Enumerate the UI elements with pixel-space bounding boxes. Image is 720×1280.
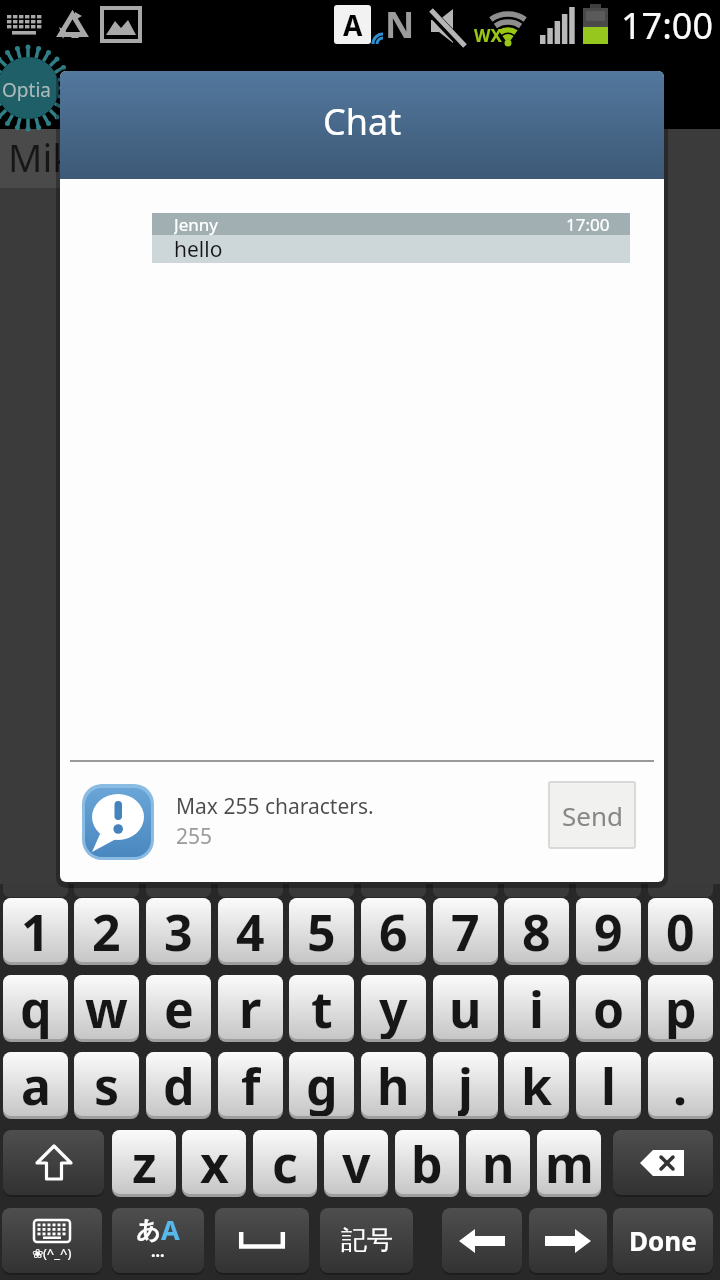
button[interactable]: 8 [504,898,569,962]
button[interactable] [215,1208,309,1273]
staticText: x [200,1130,229,1194]
button[interactable]: 記号 [320,1208,413,1273]
button[interactable]: 0 [648,898,713,962]
button[interactable]: t [289,975,354,1039]
button[interactable] [529,1208,607,1273]
staticText: r [239,975,262,1039]
staticText: 2 [92,898,121,962]
staticText: Done [629,1223,697,1258]
staticText: 17:00 [566,213,610,235]
button[interactable]: c [253,1130,317,1194]
staticText: hello [174,235,223,263]
button[interactable]: 7 [433,898,498,962]
button[interactable]: 9 [576,898,641,962]
staticText: 7 [451,898,480,962]
staticText: p [665,975,697,1039]
staticText: z [132,1130,157,1194]
staticText: あ [136,1215,161,1245]
button[interactable]: g [289,1052,354,1116]
staticText: g [306,1052,338,1116]
staticText: 8 [522,898,551,962]
staticText: u [449,975,482,1039]
staticText: s [94,1052,120,1116]
button[interactable]: 3 [146,898,211,962]
button[interactable]: w [74,975,139,1039]
button[interactable]: b [395,1130,459,1194]
staticText: a [21,1052,51,1116]
button[interactable] [3,1130,104,1195]
staticText: 5 [307,898,336,962]
button[interactable]: q [3,975,68,1039]
button[interactable]: x [182,1130,246,1194]
button[interactable]: Jenny [174,213,610,235]
staticText: Jenny [174,213,218,235]
staticText: Optia [2,77,51,101]
staticText: ... [151,1240,165,1262]
button[interactable]: h [361,1052,426,1116]
button[interactable]: e [146,975,211,1039]
button[interactable]: v [324,1130,388,1194]
button[interactable]: a [3,1052,68,1116]
staticText: c [272,1130,298,1194]
staticText: q [20,975,52,1039]
staticText: j [458,1052,473,1116]
button[interactable]: k [504,1052,569,1116]
staticText: k [521,1052,552,1116]
staticText: w [85,975,128,1039]
button[interactable]: y [361,975,426,1039]
staticText: Max 255 characters. [176,792,374,821]
button[interactable]: Send [548,781,636,849]
staticText: 9 [594,898,623,962]
staticText: l [601,1052,616,1116]
staticText: WX [474,24,502,47]
staticText: 4 [236,898,265,962]
staticText: v [342,1130,371,1194]
staticText: 17:00 [621,1,714,49]
staticText: t [311,975,333,1039]
button[interactable]: m [537,1130,601,1194]
staticText: m [545,1130,594,1194]
staticText: A [343,6,363,44]
staticText: . [673,1052,688,1116]
button[interactable]: 2 [74,898,139,962]
button[interactable] [82,784,154,860]
staticText: f [241,1052,261,1116]
button[interactable]: . [648,1052,713,1116]
button[interactable]: l [576,1052,641,1116]
button[interactable]: s [74,1052,139,1116]
button[interactable]: Done [613,1208,713,1273]
staticText: 6 [379,898,408,962]
button[interactable]: あ [112,1208,204,1273]
button[interactable]: f [218,1052,283,1116]
staticText: Mik [8,131,60,183]
staticText: A [161,1211,180,1248]
button[interactable]: n [466,1130,530,1194]
button[interactable]: p [648,975,713,1039]
staticText: 3 [164,898,193,962]
button[interactable] [613,1130,713,1195]
button[interactable]: z [112,1130,176,1194]
button[interactable]: 6 [361,898,426,962]
button[interactable] [442,1208,522,1273]
button[interactable]: r [218,975,283,1039]
button[interactable]: 5 [289,898,354,962]
staticText: e [164,975,194,1039]
button[interactable]: 4 [218,898,283,962]
button[interactable]: d [146,1052,211,1116]
staticText: N [385,0,415,48]
staticText: i [529,975,544,1039]
button[interactable]: 1 [3,898,68,962]
staticText: o [593,975,625,1039]
button[interactable]: j [433,1052,498,1116]
button[interactable]: ❀(^_^) [2,1208,102,1273]
staticText: b [411,1130,443,1194]
staticText: h [377,1052,410,1116]
staticText: 記号 [341,1224,393,1257]
staticText: 0 [666,898,695,962]
staticText: d [163,1052,195,1116]
staticText: 1 [21,898,50,962]
button[interactable]: i [504,975,569,1039]
button[interactable]: o [576,975,641,1039]
staticText: Chat [323,97,402,146]
button[interactable]: u [433,975,498,1039]
